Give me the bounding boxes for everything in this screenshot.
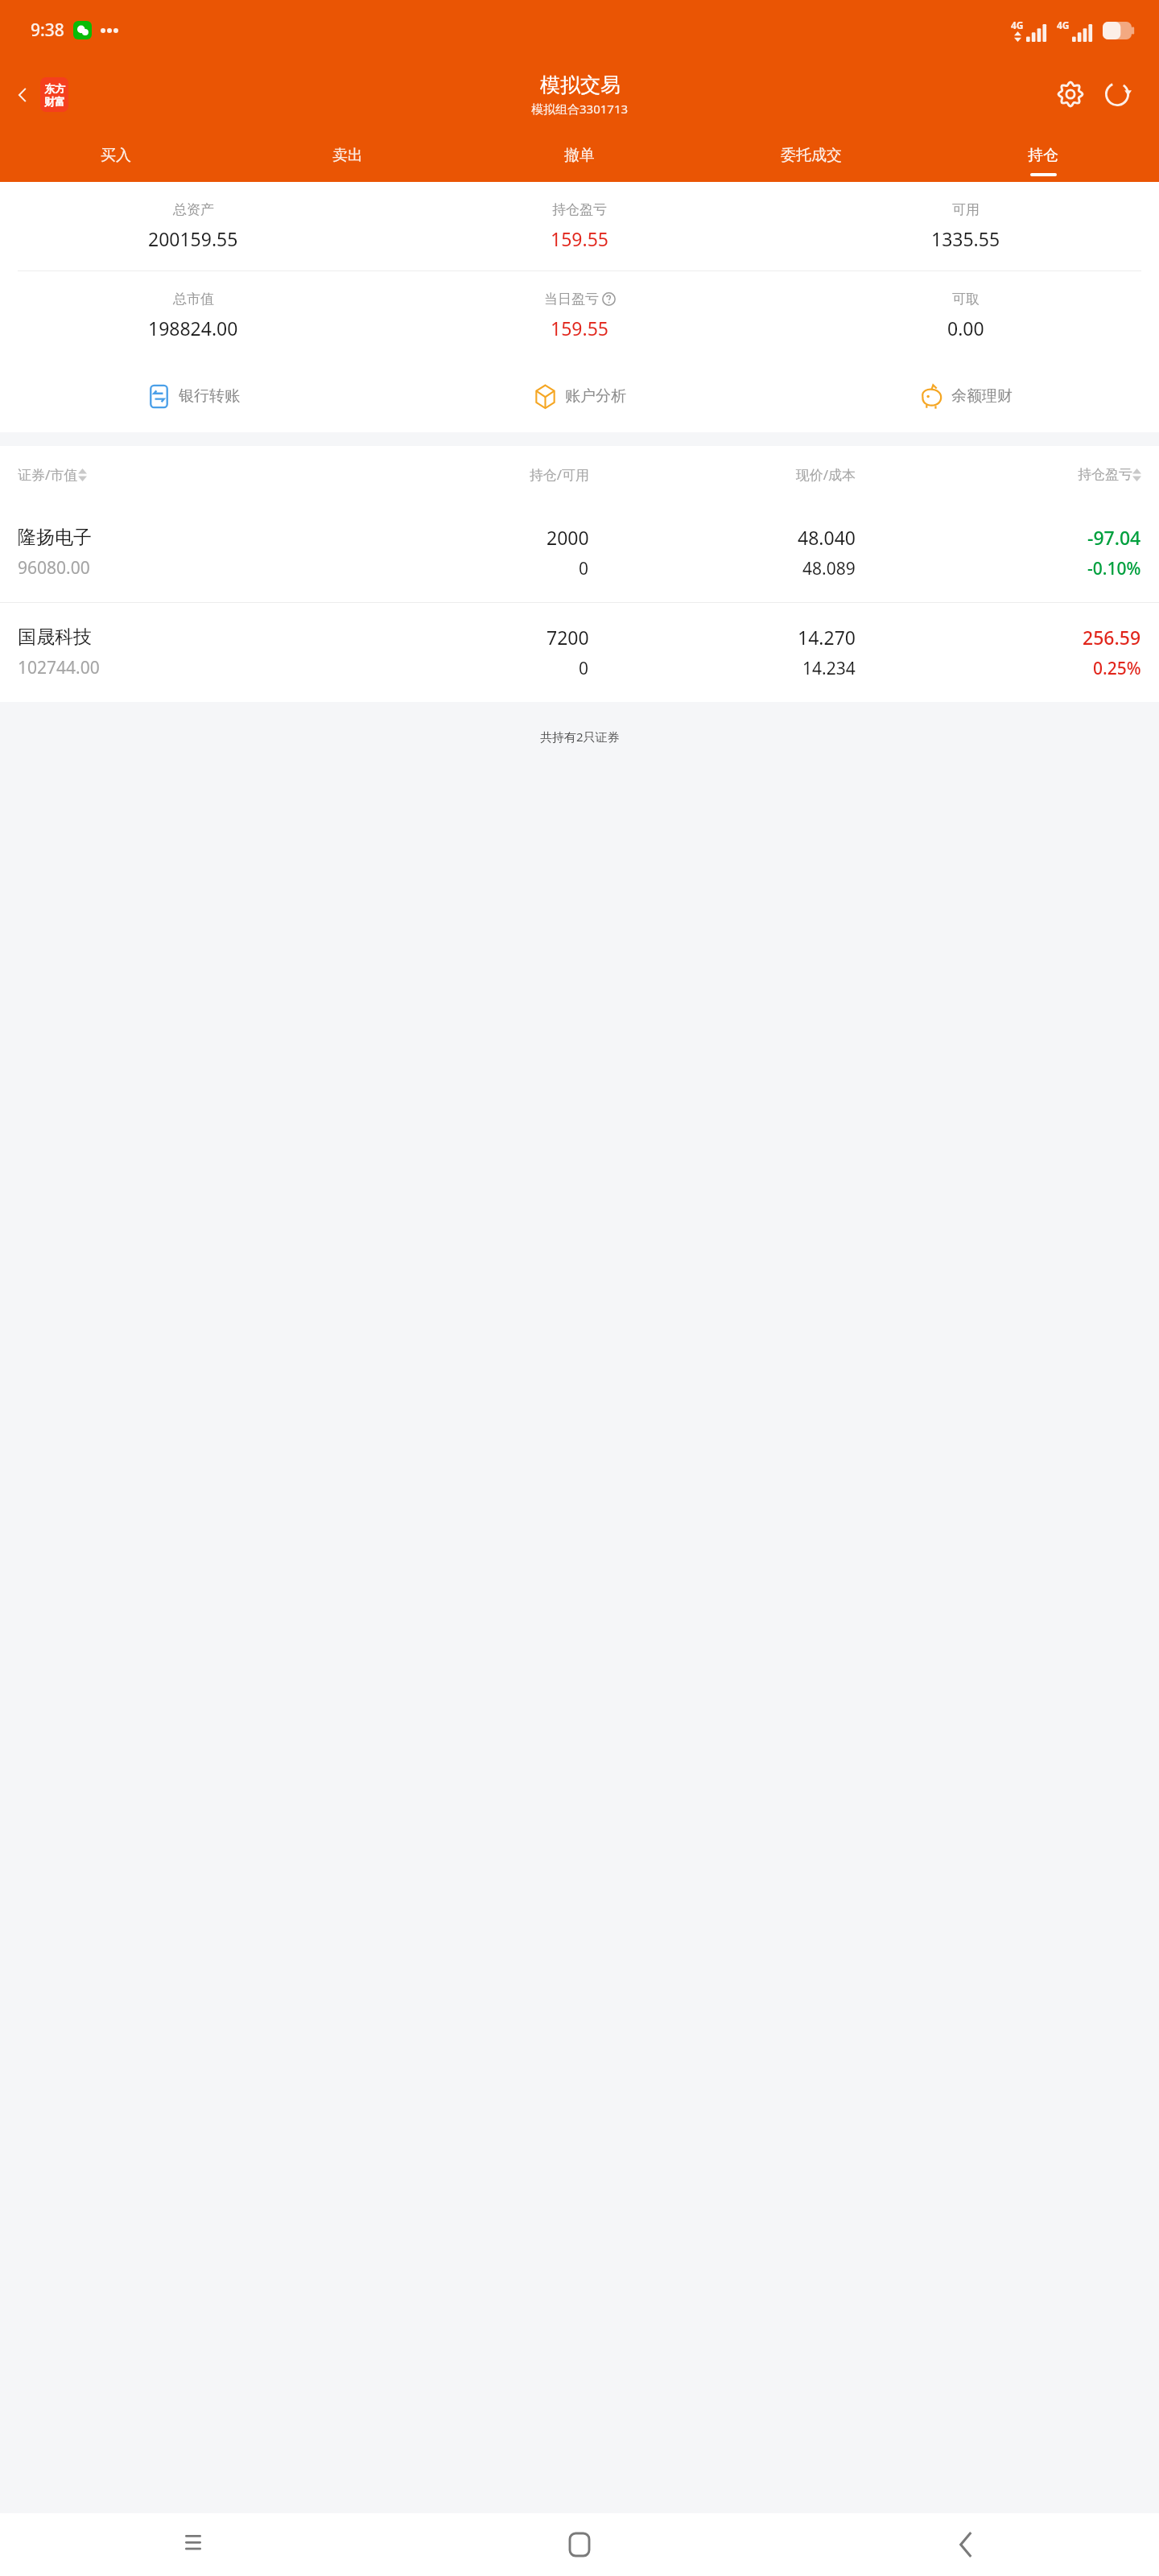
button[interactable]: 隆扬电子 [0,503,1159,602]
button[interactable]: Back [773,2513,1159,2576]
staticText: 持仓/可用 [334,465,589,484]
staticText: 持仓 [1028,146,1058,165]
staticText: 持仓盈亏 [1078,466,1132,483]
staticText: 可取 [952,291,980,308]
staticText: 现价/成本 [600,465,856,484]
staticText: 买入 [101,146,131,165]
staticText: 总资产 [173,201,214,218]
staticText: 159.55 [551,316,608,341]
button[interactable]: 卖出 [232,128,464,182]
staticText: 银行转账 [179,386,240,406]
button[interactable]: 银行转账 [0,360,386,432]
staticText: 2000 [547,525,589,550]
staticText: 可用 [952,201,980,218]
staticText: 14.234 [802,657,856,680]
staticText: 东方 [44,82,65,95]
staticText: 159.55 [551,226,608,251]
button[interactable]: 账户分析 [386,360,773,432]
staticText: 48.089 [802,557,856,580]
button[interactable]: 持仓 [927,128,1159,182]
button[interactable]: Refresh [1096,73,1138,115]
staticText: 198824.00 [148,316,238,341]
staticText: 委托成交 [781,146,842,165]
button[interactable]: 委托成交 [695,128,927,182]
staticText: 共持有2只证券 [540,729,620,745]
staticText: 14.270 [798,625,856,650]
staticText: 7200 [547,625,589,650]
button[interactable]: Back [6,71,75,118]
staticText: 隆扬电子 [18,526,92,549]
staticText: 102744.00 [18,656,100,679]
staticText: 撤单 [564,146,595,165]
staticText: 持仓盈亏 [552,201,607,218]
staticText: 卖出 [332,146,363,165]
button[interactable]: Home [386,2513,773,2576]
staticText: 当日盈亏 [544,291,599,308]
staticText: 96080.00 [18,556,90,580]
staticText: 200159.55 [148,226,238,251]
staticText: 证券/市值 [18,465,78,484]
staticText: 总市值 [173,291,214,308]
staticText: 256.59 [1083,625,1141,650]
staticText: 4G [1011,19,1024,31]
staticText: 0 [579,657,589,680]
staticText: 0.00 [947,316,984,341]
button[interactable]: 撤单 [464,128,695,182]
button[interactable]: Settings [1050,73,1091,115]
staticText: 0 [579,557,589,580]
staticText: 模拟交易 [540,72,621,97]
button[interactable]: 买入 [0,128,232,182]
staticText: 48.040 [798,525,856,550]
staticText: 财富 [44,95,65,108]
staticText: -97.04 [1087,525,1141,550]
staticText: 1335.55 [931,226,1000,251]
staticText: 余额理财 [951,386,1013,406]
staticText: 国晟科技 [18,625,92,649]
staticText: 账户分析 [565,386,626,406]
button[interactable]: Recent apps [0,2513,386,2576]
staticText: 模拟组合3301713 [531,101,629,117]
button[interactable]: 国晟科技 [0,603,1159,702]
staticText: 9:38 [31,19,64,42]
staticText: -0.10% [1087,557,1141,580]
staticText: 4G [1057,19,1070,31]
button[interactable]: 余额理财 [773,360,1159,432]
staticText: 0.25% [1093,657,1141,680]
